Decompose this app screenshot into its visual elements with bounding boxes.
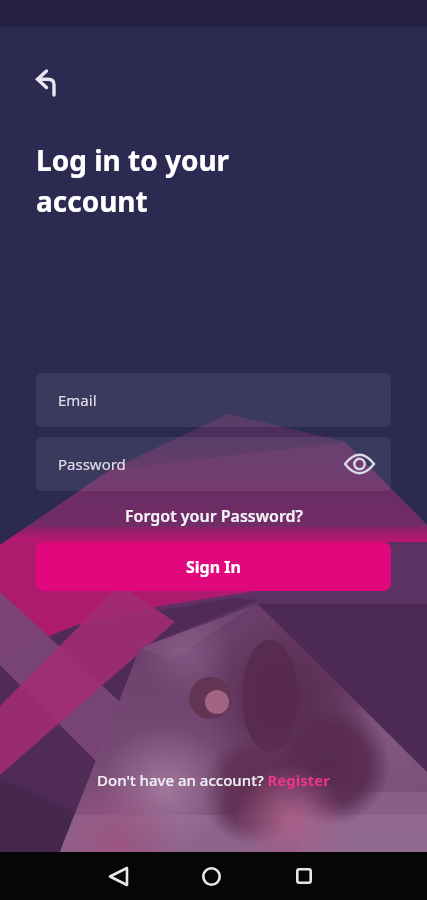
staticText: Sign In [186,556,241,578]
staticText: Forgot your Password? [125,505,303,527]
button[interactable]: Email [36,373,391,427]
button[interactable]: Forgot your Password? [0,503,427,529]
staticText: Log in to your account [36,141,230,220]
button[interactable] [341,446,377,482]
button[interactable] [191,856,231,896]
button[interactable] [98,856,138,896]
button[interactable]: Password [36,437,391,491]
staticText: Password [58,454,126,474]
staticText: Email [58,390,97,410]
staticText: Don't have an account? Register [97,770,330,790]
button[interactable]: Sign In [36,542,391,591]
button[interactable] [28,60,68,100]
button[interactable] [284,856,324,896]
button[interactable]: Don't have an account? Register [0,767,427,793]
